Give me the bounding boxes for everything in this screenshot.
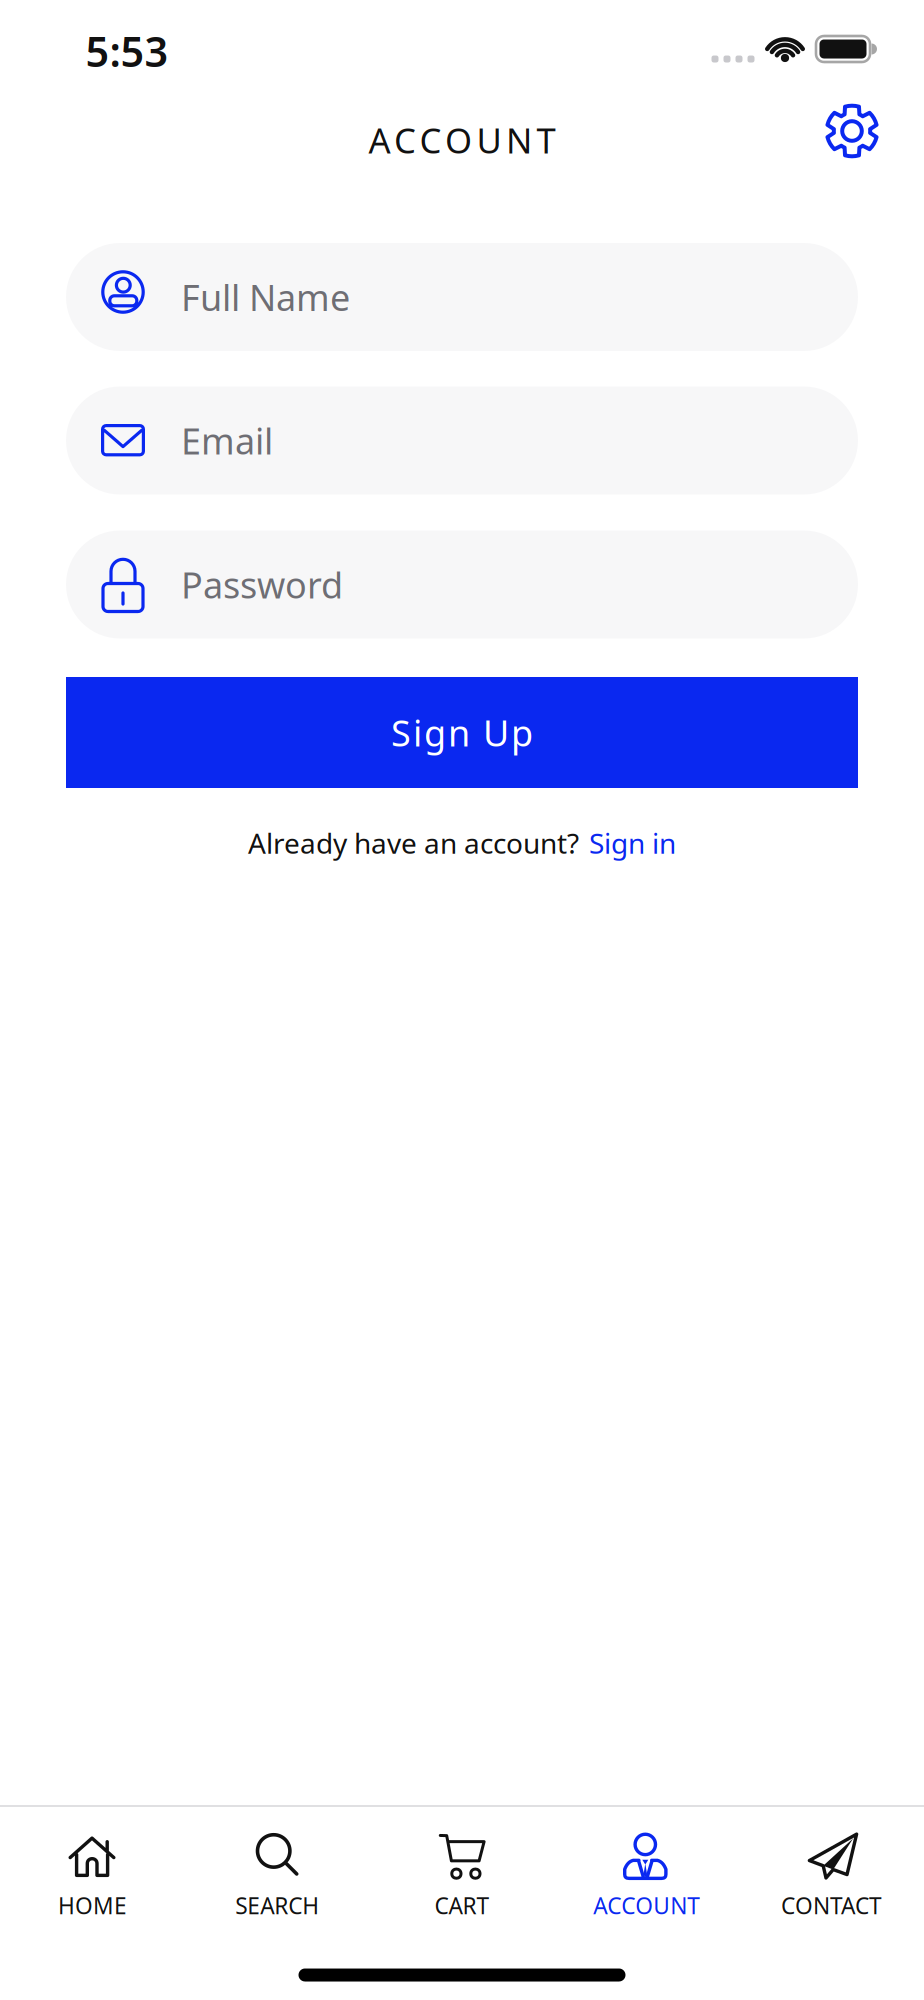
staticText: Already have an account?	[248, 824, 579, 862]
button[interactable]	[825, 104, 879, 158]
button[interactable]: Sign in	[589, 824, 676, 862]
button[interactable]: ACCOUNT	[557, 1828, 737, 1928]
staticText: HOME	[58, 1890, 127, 1920]
staticText: Sign in	[589, 824, 676, 862]
staticText: Sign Up	[391, 709, 533, 756]
staticText: Password	[181, 561, 343, 608]
button[interactable]: Password	[66, 530, 858, 638]
staticText: SEARCH	[235, 1890, 319, 1920]
staticText: Full Name	[181, 273, 350, 321]
button[interactable]: CONTACT	[742, 1828, 922, 1928]
staticText: ACCOUNT	[593, 1890, 700, 1920]
button[interactable]: SEARCH	[187, 1828, 367, 1928]
staticText: ACCOUNT	[368, 117, 555, 163]
button[interactable]: HOME	[2, 1828, 182, 1928]
staticText: Email	[181, 417, 273, 464]
button[interactable]: Email	[66, 386, 858, 494]
button[interactable]: CART	[372, 1828, 552, 1928]
staticText: 5:53	[85, 24, 168, 78]
staticText: CONTACT	[781, 1890, 882, 1920]
staticText: CART	[434, 1890, 489, 1920]
button[interactable]: Sign Up	[66, 677, 858, 788]
button[interactable]: Full Name	[66, 243, 858, 351]
